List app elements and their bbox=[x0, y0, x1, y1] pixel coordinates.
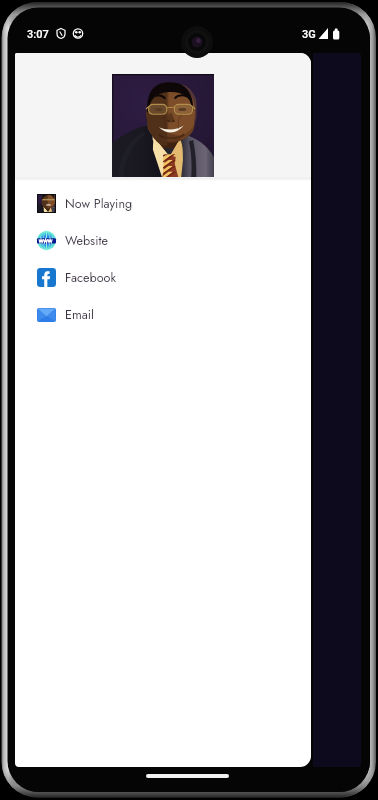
staticText: 3:07 bbox=[27, 28, 49, 41]
staticText: Email bbox=[65, 306, 94, 324]
staticText: 3G bbox=[302, 28, 316, 41]
staticText: Website bbox=[65, 232, 108, 250]
button[interactable]: Email bbox=[15, 296, 311, 333]
button[interactable]: Now Playing bbox=[15, 185, 311, 222]
button[interactable]: Facebook bbox=[15, 259, 311, 296]
staticText: Now Playing bbox=[65, 195, 133, 213]
button[interactable]: Website bbox=[15, 222, 311, 259]
staticText: Facebook bbox=[65, 269, 116, 287]
